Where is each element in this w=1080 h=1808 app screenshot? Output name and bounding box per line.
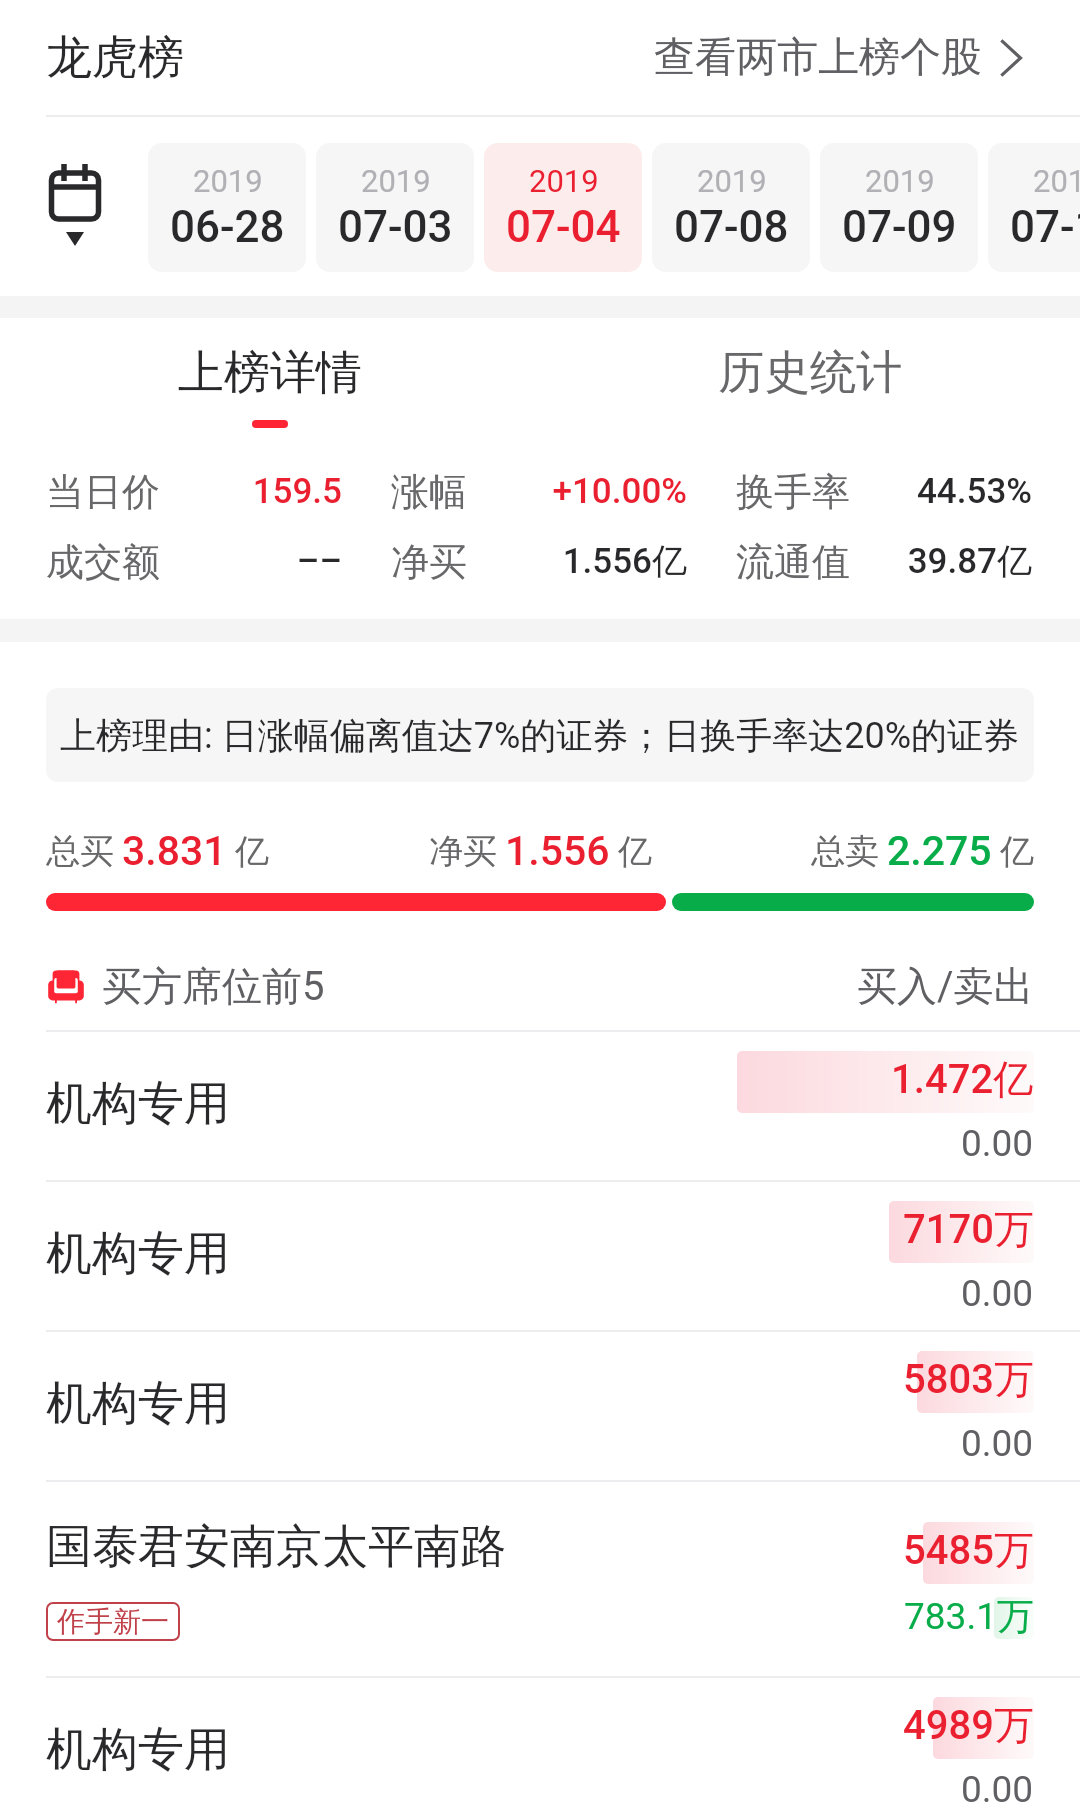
- staticText: 783.1万: [904, 1593, 1034, 1640]
- staticText: 07-04: [506, 201, 621, 253]
- staticText: 2019: [529, 163, 599, 199]
- staticText: 净买: [391, 538, 467, 584]
- staticText: 2019: [1033, 163, 1080, 199]
- button[interactable]: 机构专用: [0, 1676, 1080, 1808]
- staticText: 流通值: [736, 538, 850, 584]
- staticText: 上榜详情: [178, 344, 362, 402]
- staticText: 1.556亿: [467, 539, 687, 583]
- staticText: 涨幅: [391, 468, 467, 514]
- staticText: 07-08: [674, 201, 789, 253]
- staticText: 1.472亿: [891, 1054, 1034, 1104]
- button[interactable]: 2019: [652, 143, 810, 272]
- staticText: 2019: [361, 163, 431, 199]
- staticText: 机构专用: [46, 1375, 230, 1433]
- staticText: 龙虎榜: [46, 29, 184, 87]
- staticText: 0.00: [961, 1422, 1034, 1465]
- staticText: 作手新一: [57, 1604, 169, 1639]
- staticText: 07-10: [1010, 201, 1080, 253]
- staticText: 净买: [429, 830, 497, 873]
- button[interactable]: 上榜详情: [0, 318, 540, 438]
- button[interactable]: 国泰君安南京太平南路: [0, 1480, 1080, 1676]
- staticText: 机构专用: [46, 1225, 230, 1283]
- staticText: 06-28: [170, 201, 285, 253]
- staticText: 07-09: [842, 201, 957, 253]
- staticText: 机构专用: [46, 1075, 230, 1133]
- button[interactable]: 2019: [148, 143, 306, 272]
- staticText: +10.00%: [467, 471, 687, 512]
- staticText: 总买: [46, 830, 114, 873]
- staticText: 5803万: [903, 1354, 1034, 1404]
- button[interactable]: 机构专用: [0, 1030, 1080, 1180]
- staticText: 07-03: [338, 201, 453, 253]
- staticText: 买方席位前5: [102, 961, 325, 1011]
- staticText: 亿: [618, 830, 652, 873]
- staticText: 换手率: [736, 468, 850, 514]
- staticText: 成交额: [46, 538, 160, 584]
- staticText: 2.275: [887, 827, 992, 875]
- staticText: 3.831: [122, 827, 227, 875]
- button[interactable]: 机构专用: [0, 1180, 1080, 1330]
- button[interactable]: Select date: [30, 150, 120, 260]
- staticText: 1.556: [505, 827, 610, 875]
- staticText: 2019: [697, 163, 767, 199]
- staticText: 当日价: [46, 468, 160, 514]
- button[interactable]: 2019: [820, 143, 978, 272]
- staticText: 159.5: [160, 471, 342, 512]
- staticText: 历史统计: [718, 344, 902, 402]
- staticText: 39.87亿: [850, 539, 1032, 583]
- staticText: 44.53%: [850, 471, 1032, 512]
- staticText: 上榜理由: 日涨幅偏离值达7%的证券；日换手率达20%的证券: [60, 713, 1020, 758]
- button[interactable]: 2019: [316, 143, 474, 272]
- staticText: 买入/卖出: [857, 961, 1034, 1011]
- staticText: 总卖: [811, 830, 879, 873]
- button[interactable]: 2019: [988, 143, 1080, 272]
- staticText: 查看两市上榜个股: [654, 32, 982, 84]
- staticText: ––: [160, 541, 342, 582]
- staticText: 亿: [1000, 830, 1034, 873]
- staticText: 2019: [865, 163, 935, 199]
- staticText: 机构专用: [46, 1721, 230, 1779]
- button[interactable]: 查看两市上榜个股: [654, 32, 1022, 84]
- button[interactable]: 机构专用: [0, 1330, 1080, 1480]
- button[interactable]: 历史统计: [540, 318, 1080, 438]
- staticText: 4989万: [903, 1700, 1034, 1750]
- staticText: 5485万: [903, 1525, 1034, 1575]
- button[interactable]: 2019: [484, 143, 642, 272]
- staticText: 7170万: [903, 1204, 1034, 1254]
- staticText: 0.00: [961, 1768, 1034, 1808]
- staticText: 亿: [235, 830, 269, 873]
- staticText: 0.00: [961, 1272, 1034, 1315]
- staticText: 0.00: [961, 1122, 1034, 1165]
- staticText: 2019: [193, 163, 263, 199]
- staticText: 国泰君安南京太平南路: [46, 1518, 506, 1576]
